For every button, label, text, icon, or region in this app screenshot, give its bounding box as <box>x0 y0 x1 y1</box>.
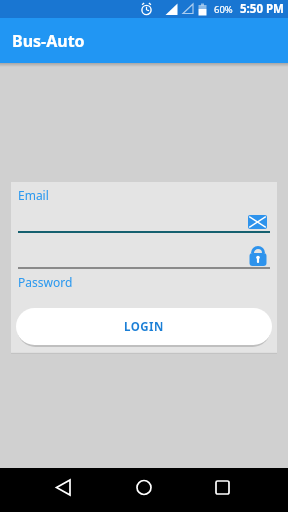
button[interactable] <box>192 468 288 512</box>
button[interactable] <box>96 468 192 512</box>
button[interactable]: LOGIN <box>16 308 272 345</box>
staticText: 5:50 PM <box>240 1 284 17</box>
button[interactable] <box>0 468 96 512</box>
staticText: 60% <box>214 3 233 16</box>
staticText: Bus-Auto <box>12 30 85 52</box>
staticText: Email <box>18 187 49 203</box>
staticText: Password <box>18 274 73 290</box>
staticText: LOGIN <box>124 319 164 335</box>
